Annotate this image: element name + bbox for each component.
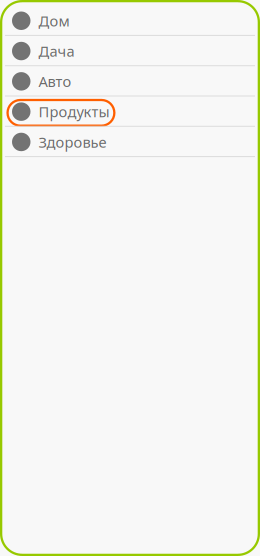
staticText: Здоровье (38, 132, 106, 152)
button[interactable]: Продукты (0, 96, 260, 127)
staticText: Авто (38, 72, 71, 91)
staticText: Дом (38, 11, 69, 30)
staticText: Продукты (38, 102, 109, 121)
button[interactable]: Дача (0, 36, 260, 66)
staticText: Дача (38, 41, 74, 61)
button[interactable]: Дом (0, 6, 260, 36)
button[interactable]: Здоровье (0, 127, 260, 157)
button[interactable]: Авто (0, 66, 260, 96)
